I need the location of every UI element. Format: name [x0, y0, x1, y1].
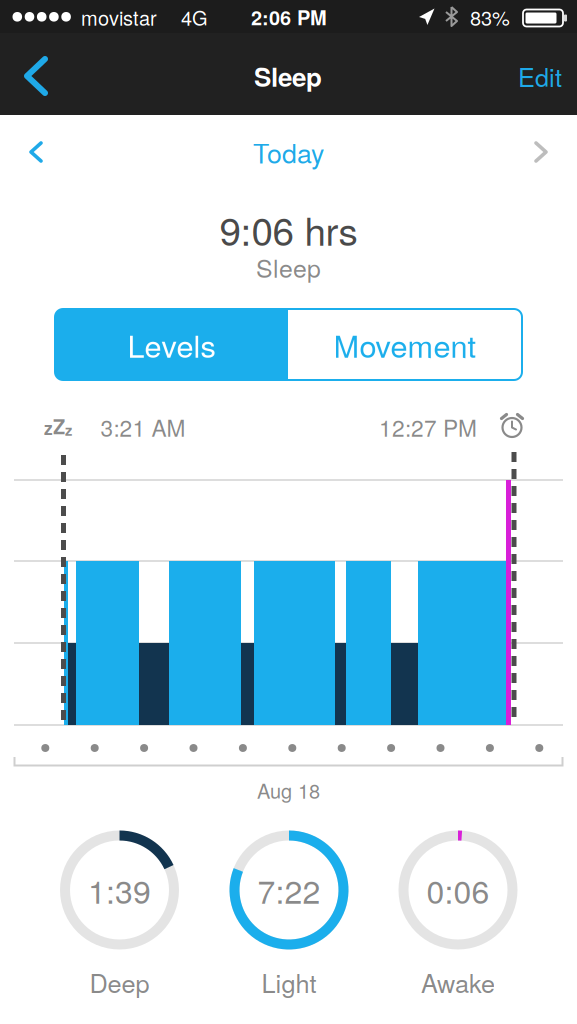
staticText: 0:06: [426, 867, 489, 913]
button[interactable]: Edit: [504, 35, 576, 117]
button[interactable]: Back: [5, 35, 67, 117]
staticText: 12:27 PM: [379, 411, 477, 443]
staticText: Deep: [89, 964, 149, 1000]
button[interactable]: Today: [198, 124, 378, 180]
staticText: 1:39: [88, 867, 151, 913]
staticText: Levels: [127, 322, 215, 366]
staticText: Today: [253, 133, 324, 171]
staticText: Sleep: [256, 249, 321, 285]
staticText: Sleep: [254, 57, 322, 95]
button[interactable]: Next day: [511, 124, 571, 180]
staticText: Movement: [333, 322, 476, 366]
staticText: movistar: [81, 3, 157, 31]
staticText: 3:21 AM: [100, 411, 185, 443]
staticText: z: [44, 415, 53, 440]
staticText: 83%: [470, 3, 510, 31]
staticText: Light: [261, 964, 316, 1000]
staticText: z: [65, 419, 72, 440]
staticText: 9:06 hrs: [219, 201, 357, 257]
button[interactable]: Previous day: [6, 124, 66, 180]
staticText: Edit: [518, 58, 562, 94]
staticText: Z: [53, 412, 65, 440]
staticText: 4G: [181, 3, 208, 31]
button[interactable]: Levels: [55, 309, 288, 380]
button[interactable]: Movement: [288, 309, 522, 380]
staticText: 2:06 PM: [251, 3, 327, 31]
staticText: 7:22: [257, 867, 320, 913]
staticText: Awake: [421, 964, 495, 1000]
staticText: Aug 18: [257, 776, 320, 804]
